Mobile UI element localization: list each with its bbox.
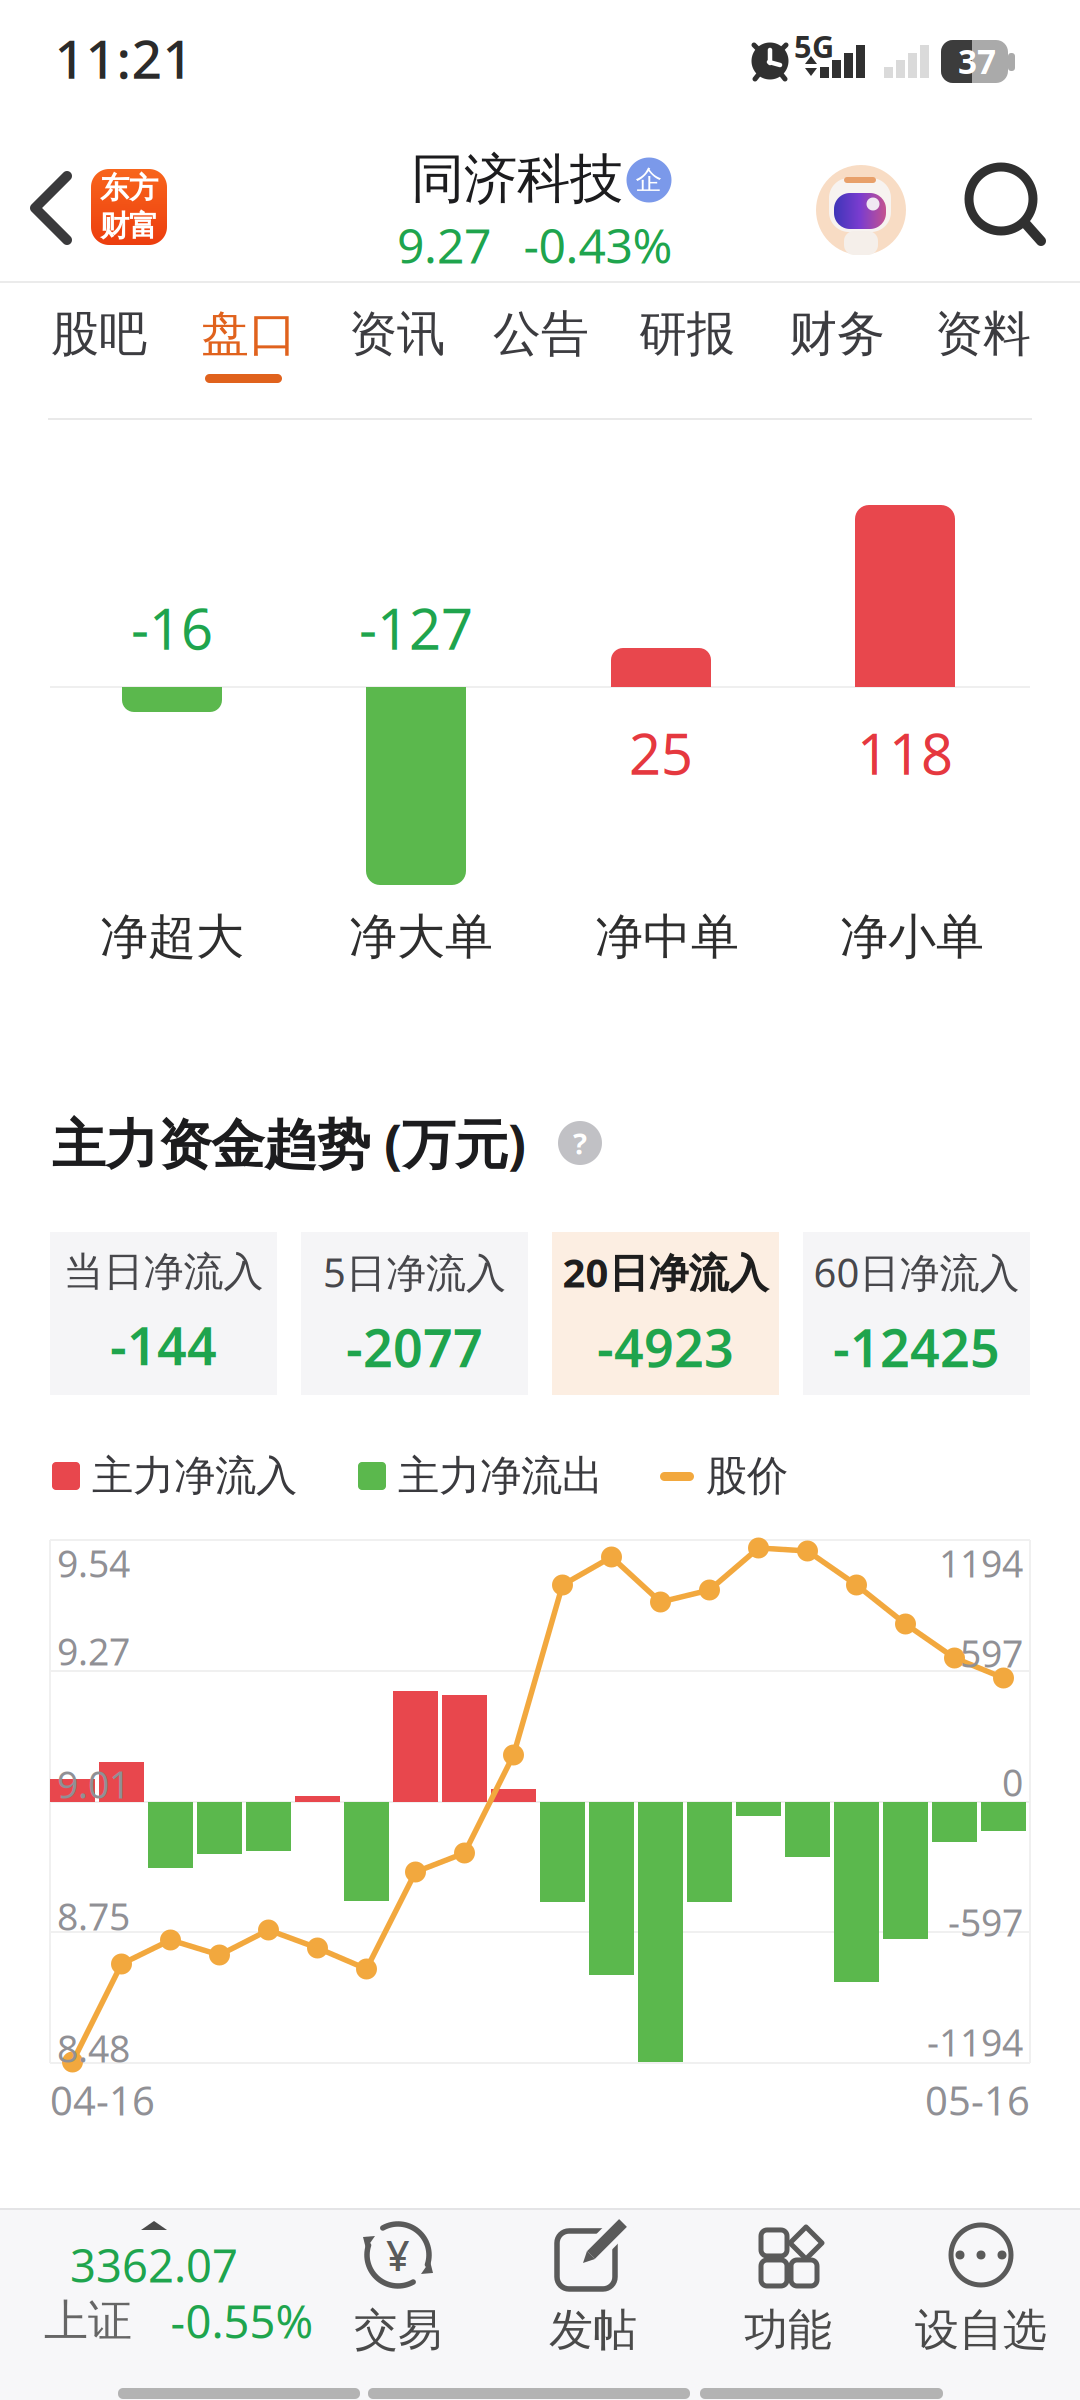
staticText: 05-16 (925, 2073, 1030, 2126)
staticText: -0.55% (170, 2291, 313, 2351)
staticText: 交易 (354, 2303, 442, 2357)
staticText: 净小单 (840, 907, 984, 966)
staticText: 同济科技 (411, 146, 623, 212)
staticText: -127 (359, 591, 473, 665)
staticText: 研报 (639, 304, 735, 363)
staticText: 9.27 (397, 213, 491, 277)
button[interactable]: 公告 (476, 289, 606, 379)
button[interactable]: 东方 (91, 169, 167, 245)
button[interactable] (25, 168, 77, 248)
button[interactable]: 当日净流入 (50, 1232, 277, 1395)
button[interactable]: 资料 (918, 289, 1048, 379)
staticText: 净中单 (595, 907, 739, 966)
staticText: 股吧 (51, 304, 147, 363)
button[interactable]: 股吧 (34, 289, 164, 379)
button[interactable]: 5日净流入 (301, 1232, 528, 1395)
button[interactable]: 资讯 (332, 289, 462, 379)
button[interactable]: 设自选 (886, 2212, 1076, 2362)
button[interactable]: 研报 (622, 289, 752, 379)
button[interactable]: 60日净流入 (803, 1232, 1030, 1395)
staticText: 04-16 (50, 2073, 155, 2126)
staticText: 9.01 (57, 1759, 130, 1809)
staticText: 20日净流入 (562, 1245, 768, 1298)
staticText: 主力资金趋势 (万元) (52, 1108, 526, 1178)
staticText: 财务 (789, 304, 885, 363)
staticText: 9.27 (57, 1626, 130, 1676)
staticText: 当日净流入 (63, 1247, 263, 1296)
staticText: 财富 (100, 208, 158, 244)
staticText: -12425 (833, 1312, 1000, 1382)
staticText: -0.43% (523, 213, 672, 277)
staticText: 发帖 (549, 2303, 637, 2357)
staticText: 118 (857, 716, 953, 790)
staticText: 597 (960, 1628, 1023, 1678)
staticText: 净超大 (100, 907, 244, 966)
staticText: 8.48 (57, 2023, 130, 2073)
staticText: 设自选 (915, 2303, 1047, 2357)
staticText: -144 (110, 1310, 217, 1380)
staticText: -4923 (597, 1312, 734, 1382)
staticText: 公告 (493, 304, 589, 363)
staticText: 60日净流入 (813, 1245, 1019, 1298)
button[interactable]: ? (558, 1121, 602, 1165)
staticText: 资料 (935, 304, 1031, 363)
staticText: 25 (629, 716, 693, 790)
staticText: 8.75 (57, 1891, 130, 1941)
staticText: -16 (131, 591, 213, 665)
button[interactable]: 3362.07 (13, 2218, 313, 2358)
button[interactable] (965, 163, 1047, 247)
button[interactable]: 功能 (693, 2212, 883, 2362)
staticText: 功能 (744, 2303, 832, 2357)
staticText: 1194 (939, 1538, 1023, 1588)
button[interactable]: 财务 (772, 289, 902, 379)
staticText: 3362.07 (70, 2235, 238, 2295)
staticText: 企 (635, 164, 662, 196)
staticText: 5G (794, 26, 834, 66)
button[interactable] (816, 165, 908, 257)
staticText: ? (573, 1123, 587, 1162)
staticText: 主力净流出 (398, 1451, 603, 1501)
button[interactable]: 发帖 (498, 2212, 688, 2362)
staticText: 上证 (44, 2294, 132, 2348)
staticText: -597 (948, 1897, 1023, 1947)
staticText: 37 (958, 39, 996, 83)
staticText: 9.54 (57, 1538, 130, 1588)
staticText: 盘口 (201, 304, 297, 363)
staticText: 资讯 (349, 304, 445, 363)
staticText: -2077 (346, 1312, 483, 1382)
staticText: ¥ (386, 2227, 410, 2282)
staticText: 股价 (706, 1451, 788, 1501)
staticText: -1194 (927, 2017, 1023, 2067)
staticText: 主力净流入 (92, 1451, 297, 1501)
staticText: 0 (1002, 1757, 1023, 1807)
button[interactable]: 盘口 (184, 289, 314, 379)
button[interactable]: 20日净流入 (552, 1232, 779, 1395)
staticText: 11:21 (54, 23, 193, 93)
staticText: 净大单 (349, 907, 493, 966)
button[interactable]: ¥ (303, 2212, 493, 2362)
staticText: 东方 (100, 170, 158, 206)
staticText: 5日净流入 (323, 1245, 506, 1298)
